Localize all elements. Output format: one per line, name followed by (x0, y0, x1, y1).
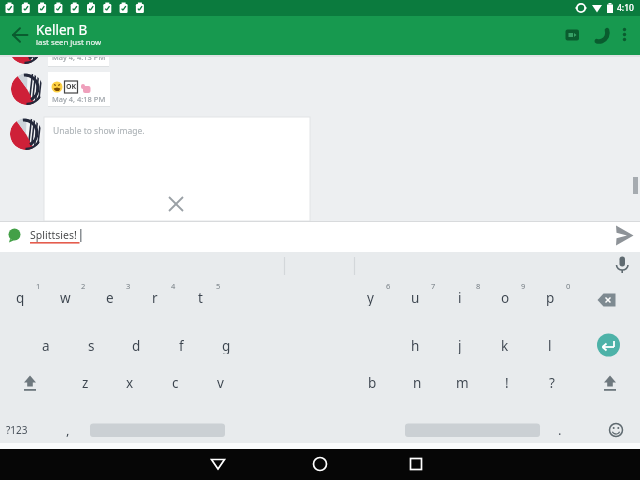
staticText: Splittsies! (30, 228, 77, 242)
staticText: , (66, 421, 70, 437)
button[interactable] (615, 23, 635, 47)
staticText: q (16, 289, 25, 306)
staticText: ?123 (6, 423, 28, 437)
staticText: f (179, 337, 184, 354)
button[interactable] (0, 414, 56, 444)
staticText: 6 (386, 281, 391, 291)
button[interactable] (198, 450, 238, 480)
staticText: v (217, 374, 224, 391)
staticText: p (546, 289, 555, 306)
staticText: b (368, 374, 377, 391)
staticText: t (198, 289, 203, 306)
staticText: k (501, 337, 509, 354)
button[interactable] (592, 288, 624, 312)
staticText: 4 (171, 281, 176, 291)
staticText: . (558, 421, 562, 437)
staticText: May 4, 4:18 PM (52, 94, 106, 104)
button[interactable] (596, 333, 622, 357)
staticText: m (456, 374, 469, 391)
staticText: z (82, 374, 89, 391)
staticText: May 4, 4:13 PM (52, 52, 106, 62)
button[interactable] (405, 420, 540, 440)
staticText: h (411, 337, 420, 354)
staticText: 1 (36, 281, 41, 291)
staticText: d (132, 337, 141, 354)
staticText: u (411, 289, 420, 306)
staticText: s (88, 337, 95, 354)
staticText: ! (505, 374, 509, 391)
staticText: g (222, 337, 231, 354)
button[interactable] (558, 23, 586, 47)
staticText: a (42, 337, 50, 354)
staticText: OK (66, 82, 77, 92)
staticText: 8 (476, 281, 481, 291)
staticText: c (172, 374, 179, 391)
staticText: 4:10 (617, 2, 634, 14)
staticText: i (458, 289, 462, 306)
staticText: w (60, 289, 71, 306)
staticText: e (106, 289, 114, 306)
button[interactable] (590, 23, 618, 47)
button[interactable] (6, 24, 34, 48)
staticText: 3 (126, 281, 131, 291)
staticText: y (367, 289, 374, 306)
staticText: x (126, 374, 134, 391)
staticText: 9 (521, 281, 526, 291)
staticText: 0 (566, 281, 571, 291)
staticText: o (501, 289, 510, 306)
staticText: 2 (81, 281, 86, 291)
staticText: n (413, 374, 422, 391)
staticText: Kellen B (36, 21, 88, 37)
button[interactable]: Splittsies! (30, 228, 90, 244)
button[interactable] (90, 420, 225, 440)
button[interactable] (396, 450, 436, 480)
button[interactable] (300, 450, 340, 480)
staticText: last seen just now (36, 37, 102, 48)
staticText: Unable to show image. (53, 125, 145, 137)
staticText: 7 (431, 281, 436, 291)
staticText: j (458, 337, 462, 354)
staticText: 5 (216, 281, 221, 291)
staticText: r (152, 289, 158, 306)
staticText: l (548, 337, 552, 354)
staticText: ? (549, 374, 555, 391)
